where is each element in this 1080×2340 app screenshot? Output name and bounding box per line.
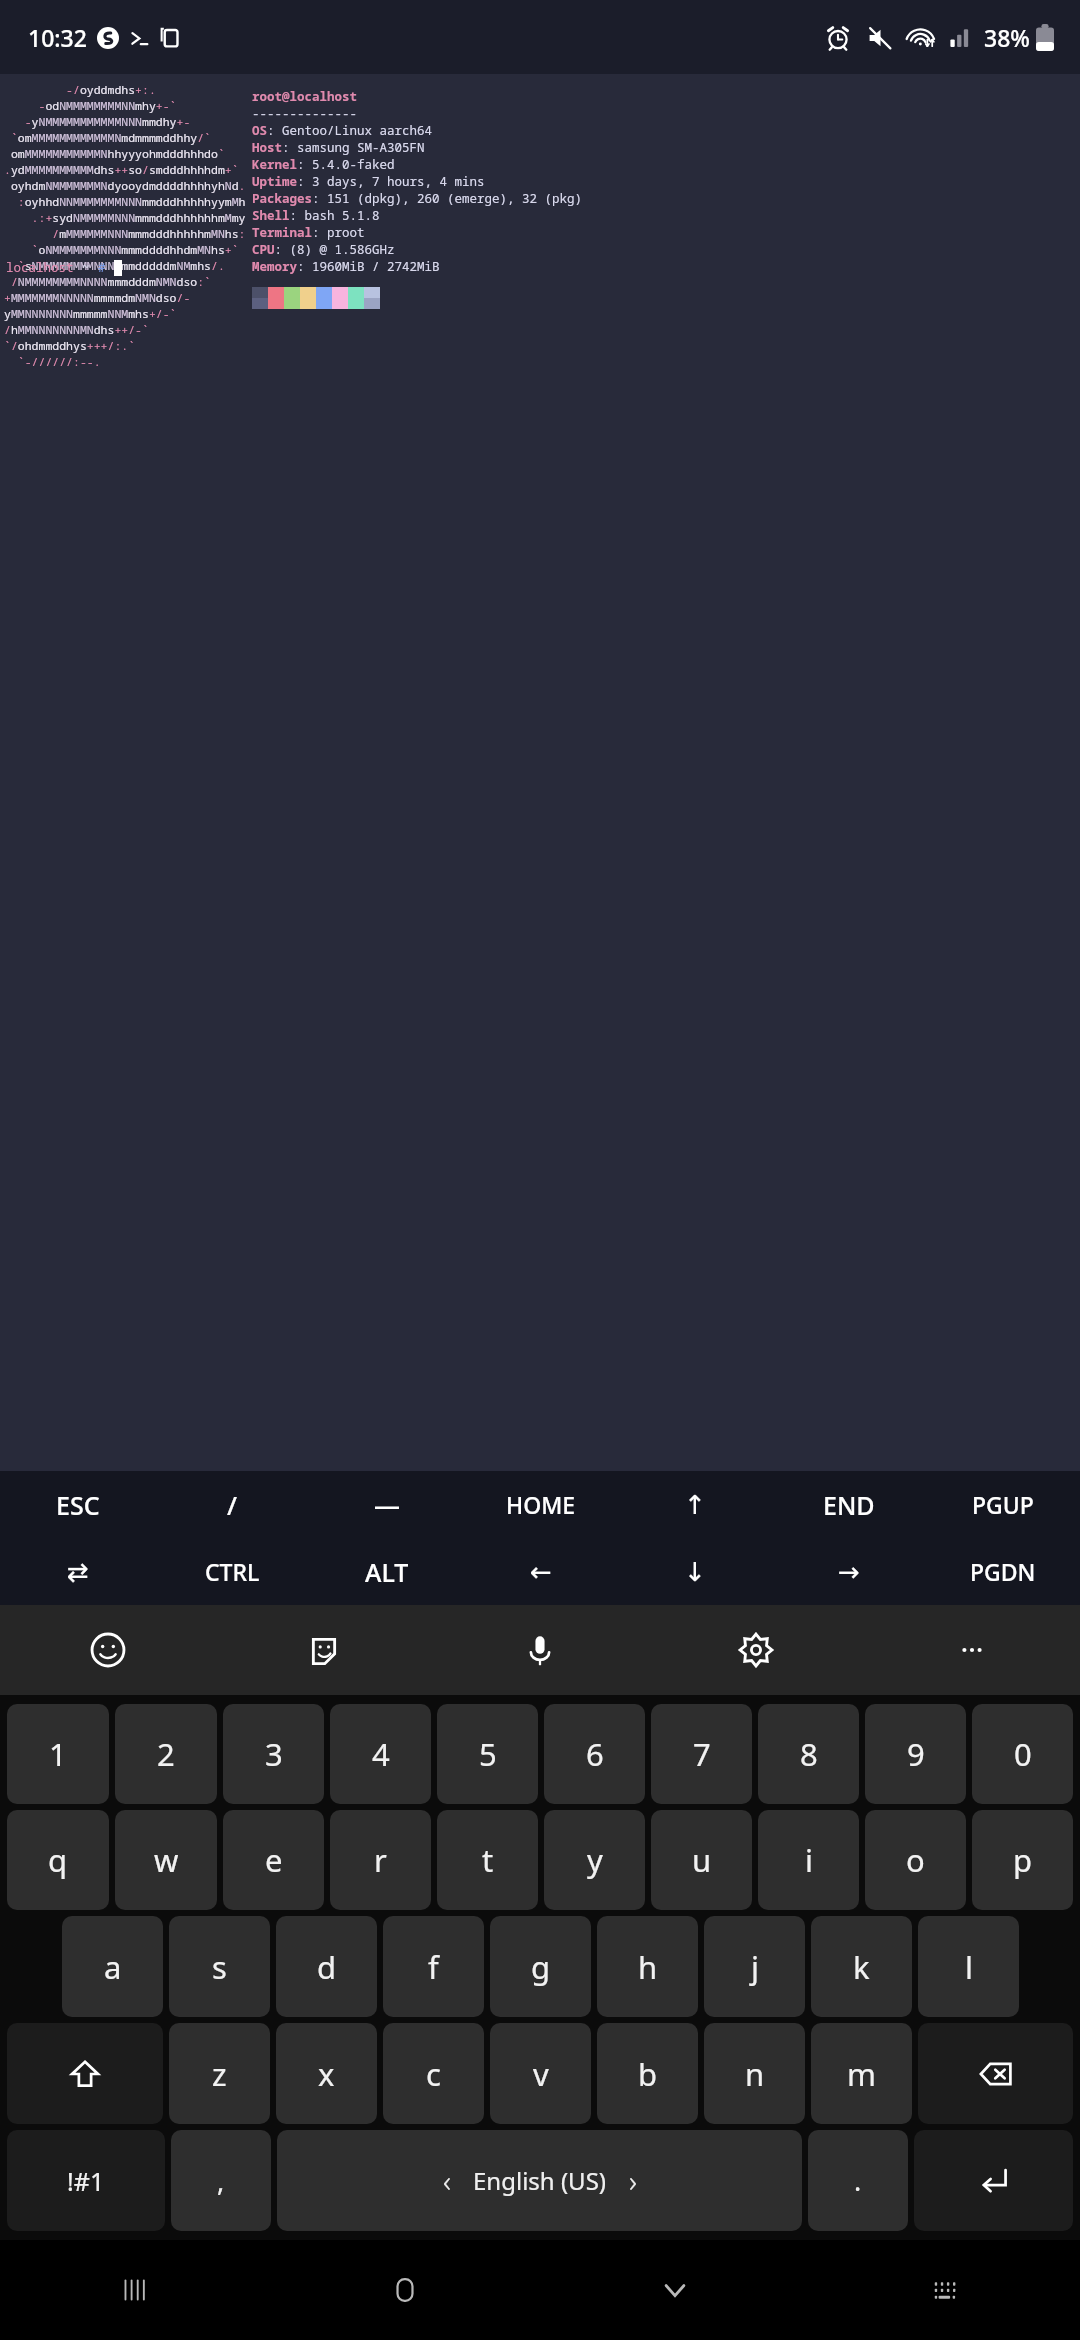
staticText: ↑ [684,1490,706,1520]
staticText: Shell: bash 5.1.8 [252,207,380,224]
staticText: ↓ [684,1557,706,1587]
button[interactable]: l [918,1916,1019,2017]
staticText: `-//////:--. [4,354,101,370]
staticText: k [853,1946,870,1988]
button[interactable]: p [972,1810,1073,1910]
staticText: 1 [49,1733,67,1775]
staticText: OS: Gentoo/Linux aarch64 [252,122,433,139]
button[interactable]: b [597,2023,698,2124]
button[interactable]: i [758,1810,859,1910]
button[interactable]: 0 [972,1704,1073,1804]
button[interactable]: , [171,2130,271,2231]
staticText: omMMMMMMMMMMMNhhyyyohmdddhhhdo` [4,146,225,162]
button[interactable]: Home [270,2240,540,2340]
button[interactable]: t [437,1810,538,1910]
button[interactable]: 5 [437,1704,538,1804]
button[interactable]: r [330,1810,431,1910]
staticText: ← [530,1557,552,1587]
button[interactable]: → [772,1538,926,1605]
button[interactable]: CTRL [155,1538,310,1605]
staticText: 2 [157,1733,175,1775]
button[interactable]: Recent apps [0,2240,270,2340]
button[interactable]: 4 [330,1704,431,1804]
button[interactable]: j [704,1916,805,2017]
button[interactable]: 9 [865,1704,966,1804]
button[interactable]: u [651,1810,752,1910]
button[interactable]: z [169,2023,270,2124]
button[interactable]: n [704,2023,805,2124]
button[interactable]: ↑ [618,1471,772,1538]
staticText: e [265,1839,283,1881]
button[interactable]: v [490,2023,591,2124]
button[interactable]: — [310,1471,464,1538]
staticText: ‹ [443,2160,451,2201]
button[interactable]: Stickers [216,1605,432,1695]
button[interactable]: m [811,2023,912,2124]
button[interactable]: g [490,1916,591,2017]
staticText: 9 [907,1733,925,1775]
button[interactable]: w [115,1810,217,1910]
button[interactable]: ALT [310,1538,464,1605]
button[interactable]: 2 [115,1704,217,1804]
staticText: 38% [984,22,1030,53]
staticText: r [374,1839,387,1881]
staticText: z [212,2053,227,2095]
button[interactable]: 8 [758,1704,859,1804]
staticText: . [854,2162,862,2199]
button[interactable]: Enter [914,2130,1073,2231]
staticText: ~ [82,259,98,276]
button[interactable]: h [597,1916,698,2017]
button[interactable]: HOME [464,1471,618,1538]
button[interactable]: k [811,1916,912,2017]
button[interactable]: !#1 [7,2130,165,2231]
button[interactable]: o [865,1810,966,1910]
staticText: h [638,1946,658,1988]
button[interactable]: q [7,1810,109,1910]
button[interactable]: 3 [223,1704,324,1804]
button[interactable]: / [155,1471,310,1538]
button[interactable]: y [544,1810,645,1910]
staticText: /NMMMMMMMMNNNNmmmdddmNMNdso:` [4,274,211,290]
staticText: /mMMMMMMNNNmmmdddhhhhhmMNhs: [4,226,246,242]
button[interactable]: c [383,2023,484,2124]
staticText: n [745,2053,765,2095]
button[interactable]: x [276,2023,377,2124]
staticText: j [751,1946,759,1988]
staticText: w [154,1839,179,1881]
button[interactable]: Backspace [918,2023,1073,2124]
button[interactable]: . [808,2130,908,2231]
button[interactable]: Voice input [432,1605,648,1695]
staticText: HOME [506,1489,576,1520]
button[interactable]: ⇄ [0,1538,155,1605]
staticText: Packages: 151 (dpkg), 260 (emerge), 32 (… [252,190,583,207]
button[interactable]: ↓ [618,1538,772,1605]
button[interactable]: Shift [7,2023,163,2124]
button[interactable]: Switch keyboard [810,2240,1080,2340]
button[interactable]: Hide keyboard [540,2240,810,2340]
staticText: o [906,1839,925,1881]
button[interactable]: f [383,1916,484,2017]
button[interactable]: 1 [7,1704,109,1804]
button[interactable]: Keyboard settings [648,1605,864,1695]
staticText: 5 [479,1733,497,1775]
staticText: END [823,1488,875,1522]
button[interactable]: a [62,1916,163,2017]
button[interactable]: PGUP [926,1471,1080,1538]
staticText: , [217,2162,225,2199]
button[interactable]: d [276,1916,377,2017]
button[interactable]: END [772,1471,926,1538]
button[interactable]: ← [464,1538,618,1605]
staticText: x [318,2053,335,2095]
button[interactable]: PGDN [926,1538,1080,1605]
staticText: `omMMMMMMMMMMMMNmdmmmmddhhy/` [4,130,211,146]
button[interactable]: More options [864,1605,1080,1695]
button[interactable]: 7 [651,1704,752,1804]
button[interactable]: e [223,1810,324,1910]
button[interactable]: 6 [544,1704,645,1804]
button[interactable]: s [169,1916,270,2017]
button[interactable]: ‹ [277,2130,802,2231]
staticText: p [1013,1839,1033,1881]
button[interactable]: Emoji [0,1605,216,1695]
staticText: s [212,1946,227,1988]
button[interactable]: ESC [0,1471,155,1538]
